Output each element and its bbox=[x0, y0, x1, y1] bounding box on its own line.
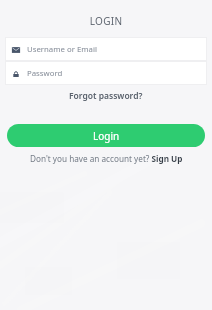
staticText: Password bbox=[27, 68, 63, 79]
staticText: Username or Email bbox=[27, 44, 97, 55]
staticText: Don't you have an account yet? Sign Up bbox=[30, 153, 183, 164]
button[interactable]: Email bbox=[6, 38, 206, 60]
staticText: Forgot password? bbox=[69, 90, 143, 102]
button[interactable]: Don't you have an account yet? Sign Up bbox=[0, 153, 212, 164]
staticText: LOGIN bbox=[0, 14, 212, 28]
staticText: Login bbox=[93, 129, 120, 143]
button[interactable]: Forgot password? bbox=[0, 90, 212, 102]
other: Password bbox=[11, 70, 21, 78]
button[interactable]: Login bbox=[7, 124, 205, 147]
other: Email bbox=[11, 46, 21, 54]
button[interactable]: Password bbox=[6, 62, 206, 84]
